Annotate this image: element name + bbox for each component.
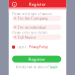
staticText: Register xyxy=(28,56,45,62)
staticText: Privacy Policy xyxy=(29,45,47,49)
staticText: I agree xyxy=(17,45,28,49)
button[interactable]: Full Name xyxy=(12,34,61,40)
button[interactable]: Back xyxy=(11,1,17,7)
staticText: I'm the Company xyxy=(18,16,48,21)
staticText: I'm an individual xyxy=(18,25,46,30)
staticText: Already have an account? xyxy=(16,65,50,69)
button[interactable]: Register xyxy=(12,56,61,62)
button[interactable]: I agree xyxy=(12,45,61,49)
button[interactable]: Already have an account? xyxy=(12,65,61,69)
staticText: Please enter your details xyxy=(12,31,47,34)
staticText: ‹ xyxy=(14,2,15,7)
staticText: Register xyxy=(29,2,46,7)
staticText: Please select type of account xyxy=(12,12,52,16)
button[interactable]: I'm the Company xyxy=(12,16,61,21)
button[interactable]: I'm an individual xyxy=(12,25,61,30)
staticText: Full Name xyxy=(18,34,36,40)
staticText: Login xyxy=(50,65,58,69)
